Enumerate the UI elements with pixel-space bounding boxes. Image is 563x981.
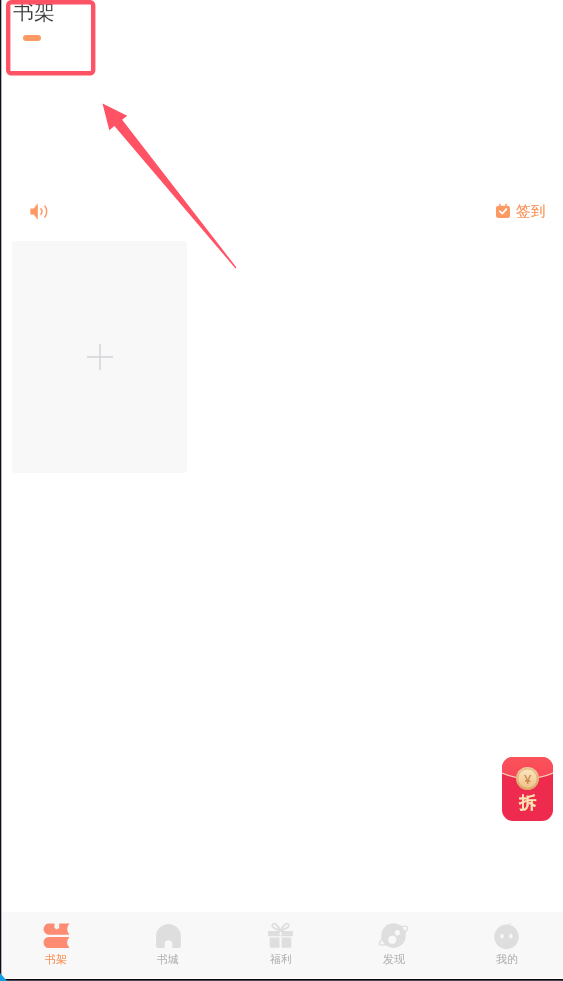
staticText: 福利 xyxy=(270,952,292,966)
staticText: 签到 xyxy=(516,202,545,220)
staticText: 书架 xyxy=(45,952,67,966)
staticText: 书城 xyxy=(157,952,179,966)
staticText: 书架 xyxy=(13,0,55,25)
button[interactable]: 签到 xyxy=(496,202,545,220)
button[interactable]: 福利 xyxy=(224,912,337,981)
staticText: 拆 xyxy=(519,793,536,814)
button[interactable]: Open red packet xyxy=(502,757,553,821)
button[interactable]: 书城 xyxy=(112,912,224,981)
button[interactable]: Volume xyxy=(30,203,47,220)
staticText: 我的 xyxy=(496,952,518,966)
button[interactable]: 书架 xyxy=(0,912,112,981)
button[interactable]: 我的 xyxy=(450,912,563,981)
staticText: 发现 xyxy=(383,952,405,966)
button[interactable]: 发现 xyxy=(337,912,450,981)
button[interactable]: 书架 xyxy=(8,0,56,44)
staticText: ¥ xyxy=(524,770,532,788)
